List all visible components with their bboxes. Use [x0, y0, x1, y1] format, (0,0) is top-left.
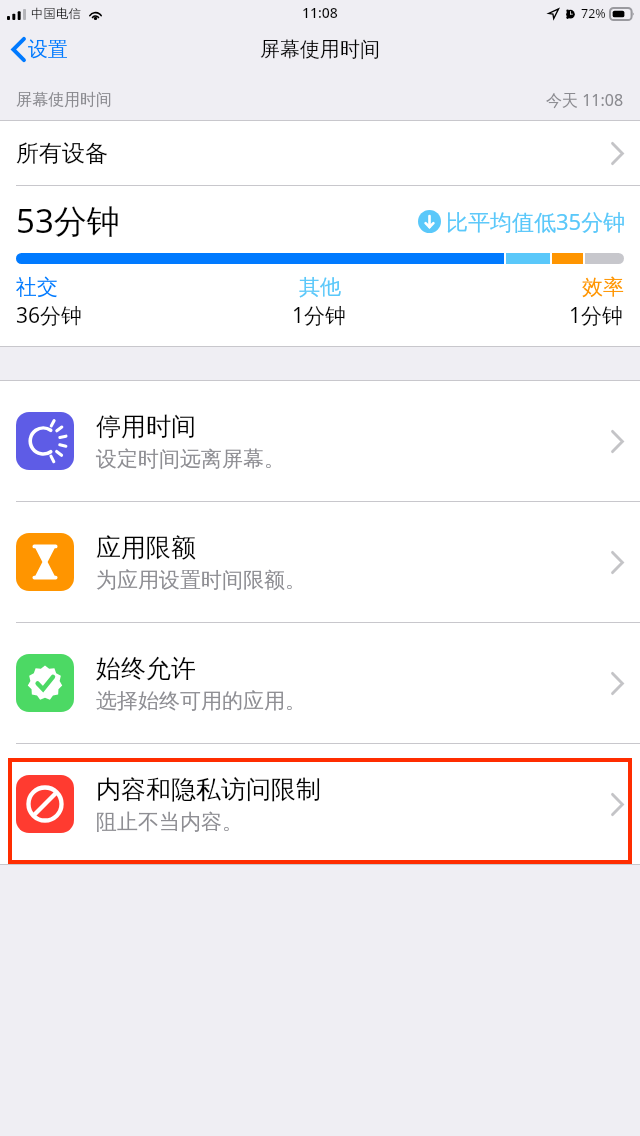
- staticText: 11:08: [302, 3, 338, 22]
- staticText: 36分钟: [16, 301, 83, 330]
- button[interactable]: 始终允许: [0, 623, 640, 743]
- button[interactable]: 应用限额: [0, 502, 640, 622]
- staticText: 屏幕使用时间: [16, 90, 112, 110]
- staticText: 53分钟: [16, 198, 120, 243]
- button[interactable]: 内容和隐私访问限制: [0, 744, 640, 864]
- staticText: 其他: [299, 274, 341, 300]
- staticText: 选择始终可用的应用。: [96, 688, 306, 714]
- staticText: 72%: [581, 5, 606, 22]
- staticText: 始终允许: [96, 653, 196, 684]
- staticText: 停用时间: [96, 411, 196, 442]
- staticText: 设定时间远离屏幕。: [96, 446, 285, 472]
- staticText: 比平均值低35分钟: [446, 206, 626, 236]
- staticText: 社交: [16, 274, 58, 300]
- staticText: 屏幕使用时间: [260, 37, 380, 62]
- staticText: 所有设备: [16, 139, 108, 168]
- staticText: 1分钟: [569, 301, 624, 330]
- staticText: 效率: [582, 274, 624, 300]
- staticText: 设置: [28, 37, 68, 62]
- other: Below average: [418, 210, 441, 233]
- staticText: 阻止不当内容。: [96, 809, 243, 835]
- staticText: 应用限额: [96, 532, 196, 563]
- button[interactable]: 停用时间: [0, 381, 640, 501]
- staticText: 为应用设置时间限额。: [96, 567, 306, 593]
- button[interactable]: 所有设备: [0, 121, 640, 185]
- button[interactable]: 设置: [0, 31, 80, 68]
- staticText: 内容和隐私访问限制: [96, 774, 321, 805]
- staticText: 1分钟: [292, 301, 347, 330]
- staticText: 今天 11:08: [546, 89, 624, 111]
- staticText: 中国电信: [31, 6, 81, 22]
